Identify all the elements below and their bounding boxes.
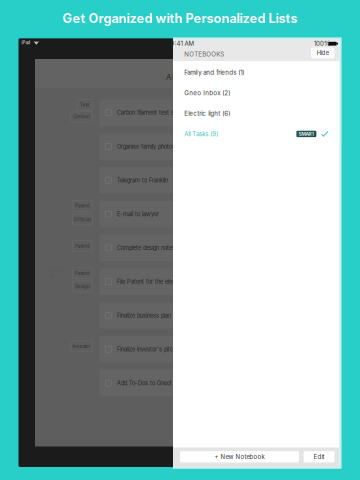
button[interactable]: Carbon filament test series xyxy=(99,99,340,126)
staticText: Patent xyxy=(75,203,90,209)
staticText: Patent xyxy=(75,270,90,276)
button[interactable]: Add To-Dos to Gneo! xyxy=(99,370,340,396)
staticText: Family and friends (1) xyxy=(184,69,244,76)
button[interactable]: Telegram to Franklin xyxy=(99,167,340,194)
button[interactable]: Complete design notes xyxy=(99,235,340,261)
staticText: Get Organized with Personalized Lists xyxy=(62,11,297,26)
button[interactable]: E-mail to lawyer xyxy=(99,201,340,227)
staticText: E-mail to lawyer xyxy=(117,211,159,218)
staticText: Patent xyxy=(75,243,90,249)
button[interactable]: All Tasks (9) xyxy=(173,124,339,144)
staticText: Add To-Dos to Gneo! xyxy=(117,380,172,387)
button[interactable]: Electric light (6) xyxy=(173,103,339,124)
button[interactable]: Gneo Inbox (2) xyxy=(173,83,339,103)
staticText: NOTEBOOKS xyxy=(184,50,224,58)
button[interactable]: Finalize investor's pitch xyxy=(99,336,340,363)
staticText: Test xyxy=(80,102,90,108)
staticText: Electric light (6) xyxy=(184,110,230,117)
staticText: Telegram to Franklin xyxy=(117,177,168,184)
staticText: Edit xyxy=(314,453,325,460)
staticText: Finalize business plan xyxy=(117,312,171,319)
button[interactable]: Organise family photos xyxy=(99,133,340,160)
staticText: File Patent for the electric xyxy=(117,278,183,285)
staticText: Finalize investor's pitch xyxy=(117,346,176,353)
button[interactable]: + New Notebook xyxy=(180,451,299,462)
staticText: Hide xyxy=(317,49,329,56)
button[interactable]: Finalize business plan xyxy=(99,302,340,329)
button[interactable]: File Patent for the electric xyxy=(99,268,340,295)
staticText: + New Notebook xyxy=(214,453,264,460)
staticText: iPad xyxy=(21,40,30,45)
staticText: Design xyxy=(75,284,90,289)
staticText: All Tasks (9) xyxy=(184,130,218,138)
button[interactable]: Edit xyxy=(304,451,334,462)
staticText: Gneo Inbox (2) xyxy=(184,89,230,97)
staticText: Carbon filament test series xyxy=(117,109,186,116)
staticText: 9:41 AM xyxy=(170,40,194,47)
button[interactable]: Family and friends (1) xyxy=(173,62,339,83)
staticText: Official xyxy=(74,217,91,222)
staticText: SMART xyxy=(298,131,314,137)
staticText: Carbon xyxy=(73,114,90,119)
staticText: ALL TASKS xyxy=(166,72,209,82)
staticText: Complete design notes xyxy=(117,245,175,251)
button[interactable]: Hide xyxy=(311,47,334,58)
staticText: 100% xyxy=(314,40,330,47)
staticText: Organise family photos xyxy=(117,143,175,150)
staticText: Investor xyxy=(72,343,90,349)
